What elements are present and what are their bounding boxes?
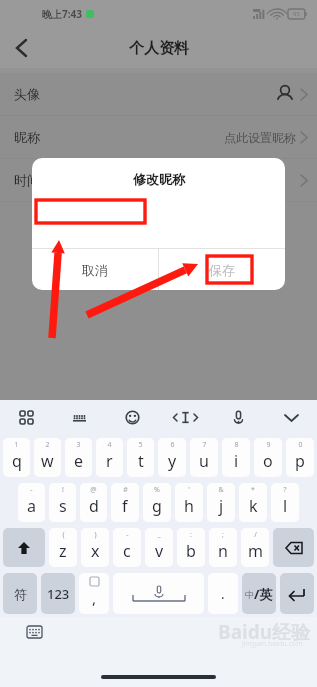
- button[interactable]: 9: [254, 438, 282, 477]
- staticText: 符: [14, 586, 27, 602]
- staticText: ;: [222, 530, 224, 540]
- button[interactable]: :: [177, 528, 205, 567]
- staticText: #: [123, 485, 128, 495]
- button[interactable]: Text cursor: [159, 400, 212, 435]
- staticText: &: [218, 485, 224, 495]
- button[interactable]: 符: [3, 573, 37, 614]
- staticText: y: [168, 450, 177, 472]
- button[interactable]: #: [111, 483, 139, 522]
- staticText: /英: [254, 585, 273, 603]
- staticText: i: [234, 450, 239, 472]
- button[interactable]: ,: [79, 573, 109, 614]
- staticText: (: [62, 530, 65, 540]
- staticText: ': [188, 485, 190, 495]
- button[interactable]: ;: [209, 528, 237, 567]
- staticText: v: [155, 540, 164, 562]
- staticText: g: [152, 495, 162, 517]
- button[interactable]: @: [80, 483, 107, 522]
- staticText: r: [106, 450, 113, 472]
- button[interactable]: (: [49, 528, 77, 567]
- staticText: *: [251, 485, 255, 495]
- button[interactable]: -: [113, 528, 141, 567]
- button[interactable]: /: [241, 528, 269, 567]
- button[interactable]: &: [207, 483, 235, 522]
- button[interactable]: [38, 202, 142, 224]
- button[interactable]: Switch keyboard: [22, 623, 46, 641]
- staticText: 4: [107, 440, 112, 450]
- button[interactable]: 6: [158, 438, 186, 477]
- staticText: 3: [76, 440, 81, 450]
- button[interactable]: 保存: [159, 249, 285, 290]
- button[interactable]: 头像: [0, 73, 317, 115]
- staticText: w: [41, 450, 54, 472]
- button[interactable]: Enter: [280, 573, 314, 614]
- staticText: j: [219, 495, 224, 517]
- button[interactable]: 昵称: [0, 116, 317, 158]
- staticText: 7: [202, 440, 207, 450]
- staticText: 点此设置昵称: [224, 130, 296, 145]
- staticText: 2: [45, 440, 50, 450]
- button[interactable]: ?: [271, 483, 299, 522]
- staticText: z: [59, 540, 67, 562]
- staticText: 1: [14, 440, 19, 450]
- staticText: 保存: [209, 262, 235, 278]
- button[interactable]: %: [143, 483, 171, 522]
- staticText: ?: [283, 485, 287, 495]
- staticText: b: [186, 540, 196, 562]
- staticText: s: [59, 495, 67, 517]
- staticText: 95: [293, 10, 300, 18]
- button[interactable]: !: [49, 483, 76, 522]
- staticText: o: [263, 450, 273, 472]
- button[interactable]: Space: [113, 573, 204, 614]
- button[interactable]: 取消: [32, 249, 158, 290]
- button[interactable]: Back: [0, 28, 42, 68]
- staticText: u: [199, 450, 209, 472]
- button[interactable]: ): [81, 528, 109, 567]
- button[interactable]: 8: [222, 438, 250, 477]
- button[interactable]: Apps: [0, 400, 53, 435]
- staticText: 时间: [14, 172, 40, 188]
- staticText: k: [249, 495, 258, 517]
- staticText: -: [30, 485, 33, 495]
- button[interactable]: ': [175, 483, 203, 522]
- button[interactable]: Shift: [3, 528, 45, 567]
- staticText: ): [94, 530, 97, 540]
- staticText: x: [91, 540, 100, 562]
- staticText: jingyan.baidu.com: [242, 639, 303, 649]
- button[interactable]: Emoji: [106, 400, 159, 435]
- button[interactable]: 4: [96, 438, 123, 477]
- staticText: .: [221, 585, 225, 603]
- button[interactable]: 3: [65, 438, 92, 477]
- button[interactable]: 时间: [0, 159, 317, 201]
- staticText: e: [74, 450, 84, 472]
- button[interactable]: .: [208, 573, 238, 614]
- button[interactable]: 2: [34, 438, 61, 477]
- button[interactable]: -: [18, 483, 45, 522]
- staticText: q: [12, 450, 22, 472]
- staticText: 头像: [14, 86, 40, 102]
- button[interactable]: 7: [190, 438, 218, 477]
- button[interactable]: 1: [3, 438, 30, 477]
- button[interactable]: Backspace: [273, 528, 314, 567]
- staticText: 昵称: [14, 129, 40, 145]
- staticText: 取消: [82, 262, 108, 278]
- button[interactable]: 5: [127, 438, 154, 477]
- button[interactable]: Voice input: [212, 400, 265, 435]
- button[interactable]: 中: [242, 573, 276, 614]
- staticText: n: [218, 540, 228, 562]
- button[interactable]: *: [239, 483, 267, 522]
- staticText: f: [122, 495, 128, 517]
- staticText: !: [62, 485, 64, 495]
- staticText: 5: [138, 440, 143, 450]
- button[interactable]: Hide keyboard: [265, 400, 317, 435]
- button[interactable]: 0: [286, 438, 314, 477]
- staticText: t: [138, 450, 144, 472]
- staticText: ,: [92, 588, 97, 608]
- button[interactable]: Keyboard layout: [53, 400, 106, 435]
- staticText: 中: [245, 589, 254, 600]
- staticText: -: [126, 530, 129, 540]
- staticText: /: [254, 530, 257, 540]
- button[interactable]: 123: [41, 573, 75, 614]
- staticText: 123: [47, 585, 70, 603]
- button[interactable]: _: [145, 528, 173, 567]
